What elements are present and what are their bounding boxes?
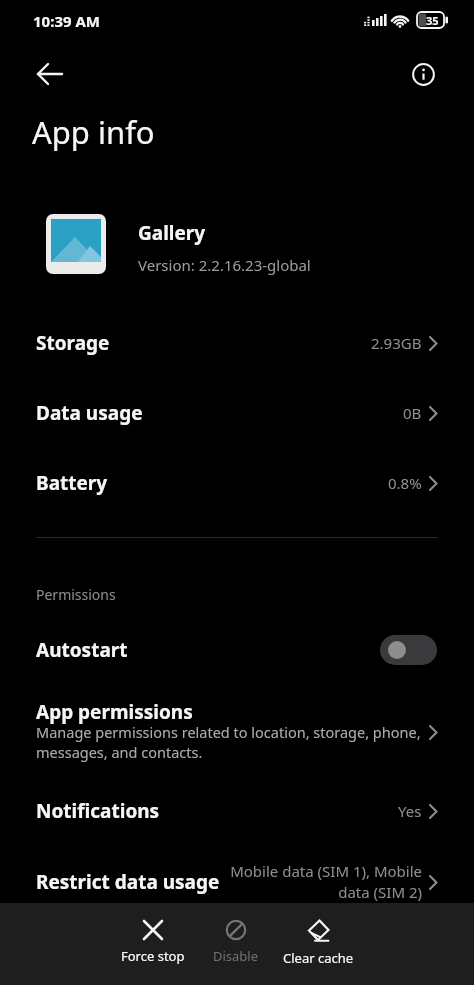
button[interactable]: Notifications <box>0 783 474 839</box>
button[interactable]: App permissions <box>0 694 474 770</box>
staticText: Autostart <box>36 637 128 663</box>
staticText: Data usage <box>36 400 143 426</box>
button[interactable]: Disable <box>191 903 281 985</box>
staticText: Clear cache <box>283 949 354 967</box>
staticText: Gallery <box>138 220 206 246</box>
staticText: 0B <box>403 403 422 423</box>
button[interactable]: Restrict data usage <box>0 848 474 916</box>
staticText: 2.93GB <box>371 333 422 353</box>
staticText: Yes <box>398 801 422 821</box>
staticText: Manage permissions related to location, … <box>36 722 456 762</box>
button[interactable]: Storage <box>0 315 474 371</box>
button[interactable] <box>399 50 447 98</box>
staticText: Restrict data usage <box>36 869 220 895</box>
staticText: Disable <box>213 947 259 965</box>
button[interactable]: Autostart <box>0 622 474 678</box>
staticText: Battery <box>36 470 108 496</box>
button[interactable] <box>26 50 74 98</box>
staticText: 35 <box>426 13 439 28</box>
button[interactable]: Force stop <box>108 903 198 985</box>
button[interactable]: Clear cache <box>273 903 363 985</box>
staticText: 0.8% <box>388 473 422 493</box>
staticText: Notifications <box>36 798 160 824</box>
staticText: Force stop <box>121 947 185 965</box>
button[interactable]: Battery <box>0 455 474 511</box>
button[interactable]: Data usage <box>0 385 474 441</box>
staticText: Version: 2.2.16.23-global <box>138 255 311 275</box>
staticText: Storage <box>36 330 110 356</box>
staticText: App permissions <box>36 699 193 725</box>
staticText: Mobile data (SIM 1), Mobile data (SIM 2) <box>230 861 422 903</box>
staticText: App info <box>32 111 155 153</box>
staticText: Permissions <box>36 585 116 604</box>
staticText: 10:39 AM <box>33 11 100 31</box>
